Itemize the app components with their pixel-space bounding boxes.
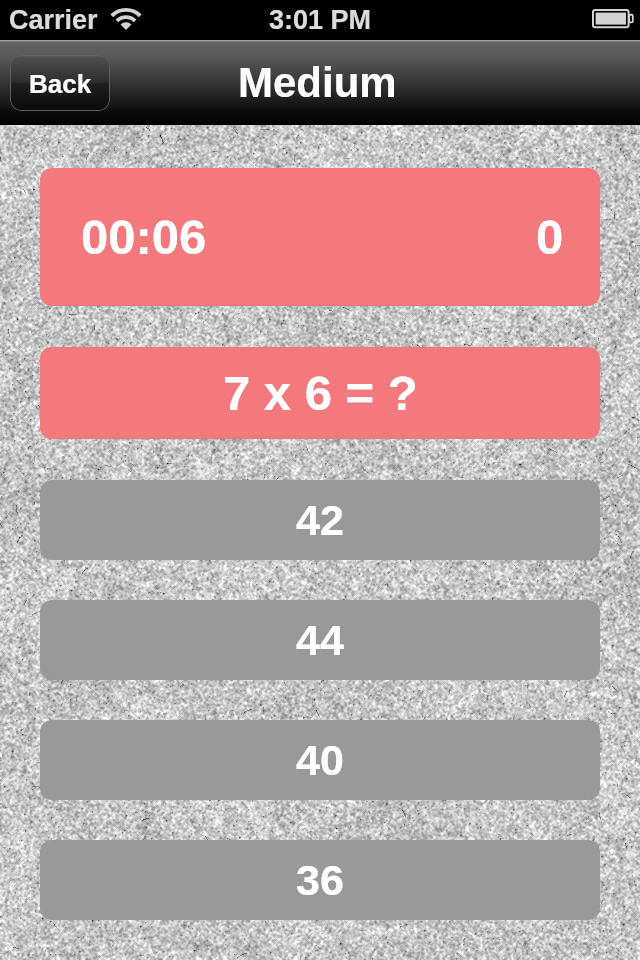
staticText: 44 [296,616,344,664]
staticText: 3:01 PM [269,5,372,35]
other: Battery full [592,9,634,29]
staticText: 0 [536,210,564,265]
staticText: Medium [238,59,397,106]
button[interactable]: 44 [40,600,600,680]
staticText: 42 [296,496,344,544]
staticText: Back [29,69,92,98]
staticText: 36 [296,856,344,904]
button[interactable]: Back [10,55,110,111]
other: Wi-Fi signal [110,8,142,30]
button[interactable]: 42 [40,480,600,560]
staticText: Carrier [9,5,98,35]
staticText: 00:06 [81,210,207,265]
staticText: 7 x 6 = ? [223,366,418,421]
staticText: 40 [296,736,344,784]
button[interactable]: 36 [40,840,600,920]
button[interactable]: 40 [40,720,600,800]
